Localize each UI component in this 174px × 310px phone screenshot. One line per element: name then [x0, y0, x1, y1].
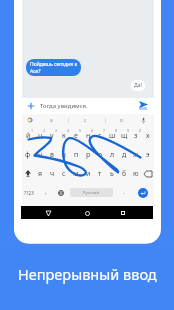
button[interactable]: а	[58, 145, 70, 164]
staticText: ф	[25, 150, 31, 160]
staticText: л	[110, 150, 115, 160]
staticText: у	[50, 131, 54, 141]
staticText: э	[146, 150, 150, 160]
button[interactable]: Back	[42, 207, 54, 219]
staticText: д	[122, 150, 127, 160]
button[interactable]: р	[82, 145, 94, 164]
button[interactable]: п	[70, 145, 82, 164]
button[interactable]: и	[82, 164, 94, 183]
staticText: я	[38, 169, 43, 179]
staticText: Русский	[83, 190, 100, 196]
staticText: х	[146, 131, 150, 141]
button[interactable]: о	[114, 114, 128, 126]
staticText: т	[98, 169, 102, 179]
staticText: 9	[127, 128, 130, 133]
button[interactable]: в	[46, 145, 58, 164]
staticText: о	[98, 150, 103, 160]
staticText: ,	[45, 188, 47, 196]
button[interactable]: ф	[22, 145, 34, 164]
button[interactable]: Voice input	[141, 117, 146, 124]
button[interactable]: е	[70, 126, 82, 145]
staticText: и	[86, 169, 91, 179]
staticText: 1	[31, 128, 34, 133]
staticText: 6	[91, 128, 94, 133]
button[interactable]: б	[118, 164, 130, 183]
staticText: г	[98, 131, 102, 141]
staticText: а	[50, 117, 53, 124]
staticText: с	[62, 169, 66, 179]
button[interactable]: н	[82, 126, 94, 145]
staticText: 0	[139, 128, 142, 133]
button[interactable]: ь	[106, 164, 118, 183]
button[interactable]: к	[58, 126, 70, 145]
button[interactable]: Change language	[55, 183, 67, 202]
button[interactable]: т	[94, 164, 106, 183]
button[interactable]: д	[118, 145, 130, 164]
staticText: .	[123, 188, 125, 196]
button[interactable]: Add attachment	[27, 102, 35, 110]
button[interactable]: с	[58, 164, 70, 183]
button[interactable]: .	[116, 183, 131, 202]
button[interactable]: Русский	[70, 188, 113, 197]
button[interactable]: ?123	[22, 183, 36, 202]
staticText: й	[26, 131, 31, 141]
staticText: б	[122, 169, 127, 179]
button[interactable]: й	[22, 126, 34, 145]
button[interactable]: ,	[36, 183, 55, 202]
staticText: Непрерывный ввод	[18, 264, 157, 284]
button[interactable]: Enter	[131, 183, 154, 202]
button[interactable]: Home	[81, 207, 93, 219]
staticText: р	[86, 150, 91, 160]
staticText: ю	[133, 169, 139, 179]
staticText: Пойдешь сегодня к Асе?	[30, 61, 78, 75]
button[interactable]: э	[142, 145, 154, 164]
button[interactable]: м	[70, 164, 82, 183]
button[interactable]: Backspace	[142, 164, 154, 183]
staticText: ы	[37, 150, 43, 160]
button[interactable]: ч	[46, 164, 58, 183]
button[interactable]: у	[46, 126, 58, 145]
button[interactable]: з	[130, 126, 142, 145]
button[interactable]: Да!	[131, 80, 145, 91]
button[interactable]: Shift	[22, 164, 34, 183]
button[interactable]: ш	[106, 126, 118, 145]
button[interactable]: л	[106, 145, 118, 164]
button[interactable]: щ	[118, 126, 130, 145]
staticText: Тогда увидимся.	[40, 102, 88, 110]
staticText: SMS	[139, 106, 148, 111]
button[interactable]: с	[78, 114, 92, 126]
staticText: ж	[133, 150, 139, 160]
button[interactable]: а	[44, 114, 58, 126]
button[interactable]: Recents	[117, 207, 129, 219]
staticText: н	[86, 131, 91, 141]
staticText: ш	[109, 131, 116, 141]
staticText: 3	[55, 128, 58, 133]
button[interactable]: ц	[34, 126, 46, 145]
staticText: з	[134, 131, 138, 141]
staticText: ь	[110, 169, 114, 179]
staticText: е	[74, 131, 78, 141]
staticText: 4	[67, 128, 70, 133]
button[interactable]: Пойдешь сегодня к Асе?	[26, 59, 81, 76]
staticText: в	[50, 150, 54, 160]
staticText: щ	[121, 131, 128, 141]
button[interactable]: о	[94, 145, 106, 164]
staticText: м	[73, 169, 79, 179]
staticText: к	[62, 131, 66, 141]
staticText: 8	[115, 128, 118, 133]
staticText: п	[74, 150, 79, 160]
staticText: Да!	[134, 82, 142, 89]
staticText: 7	[103, 128, 106, 133]
button[interactable]: я	[34, 164, 46, 183]
staticText: с	[84, 117, 87, 124]
button[interactable]: Send SMS	[136, 99, 150, 114]
button[interactable]: ж	[130, 145, 142, 164]
staticText: 5	[79, 128, 82, 133]
button[interactable]: х	[142, 126, 154, 145]
button[interactable]: г	[94, 126, 106, 145]
staticText: ч	[50, 169, 55, 179]
button[interactable]: ю	[130, 164, 142, 183]
staticText: ?123	[24, 190, 34, 196]
button[interactable]: ы	[34, 145, 46, 164]
staticText: о	[120, 117, 123, 124]
